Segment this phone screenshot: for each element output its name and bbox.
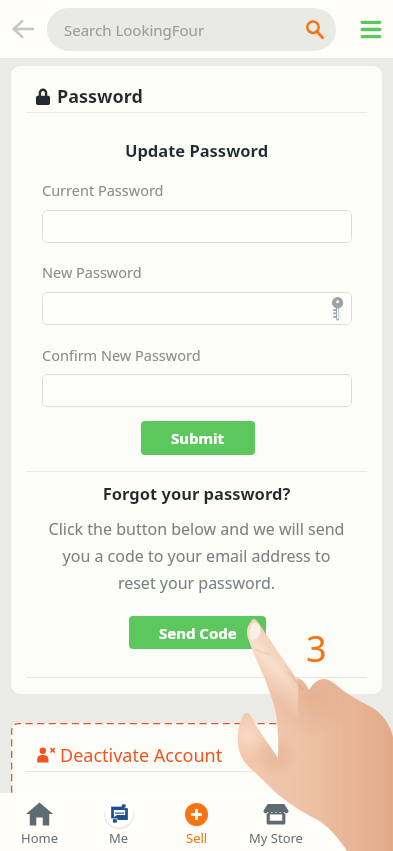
staticText: Forgot your password? xyxy=(11,482,382,504)
staticText: Send Code xyxy=(159,623,237,643)
button[interactable]: Search LookingFour xyxy=(47,8,336,51)
staticText: Submit xyxy=(171,428,225,448)
staticText: Password xyxy=(57,84,143,109)
button[interactable]: My Store xyxy=(236,793,316,851)
button[interactable]: Sell xyxy=(157,793,236,851)
staticText: Me xyxy=(109,829,129,847)
staticText: New Password xyxy=(42,262,142,282)
staticText: Home xyxy=(21,829,58,847)
button[interactable]: Back xyxy=(0,0,47,58)
button[interactable]: Send Code xyxy=(129,616,266,649)
staticText: Update Password xyxy=(11,139,382,161)
staticText: Sell xyxy=(186,829,208,847)
button[interactable] xyxy=(42,292,352,325)
button[interactable]: Deactivate Account xyxy=(36,741,223,769)
button[interactable]: Submit xyxy=(141,421,255,455)
button[interactable] xyxy=(42,210,352,243)
button[interactable]: Menu xyxy=(336,0,393,58)
staticText: Deactivate Account xyxy=(60,743,223,768)
staticText: Confirm New Password xyxy=(42,345,201,365)
button[interactable]: Home xyxy=(0,793,78,851)
staticText: Search LookingFour xyxy=(64,20,292,40)
staticText: My Store xyxy=(249,829,303,847)
staticText: Click the button below and we will send … xyxy=(47,518,346,594)
staticText: Current Password xyxy=(42,180,164,200)
staticText: 3 xyxy=(306,624,327,673)
button[interactable]: Me xyxy=(79,793,158,851)
button[interactable]: Password xyxy=(36,81,143,111)
button[interactable] xyxy=(42,374,352,407)
